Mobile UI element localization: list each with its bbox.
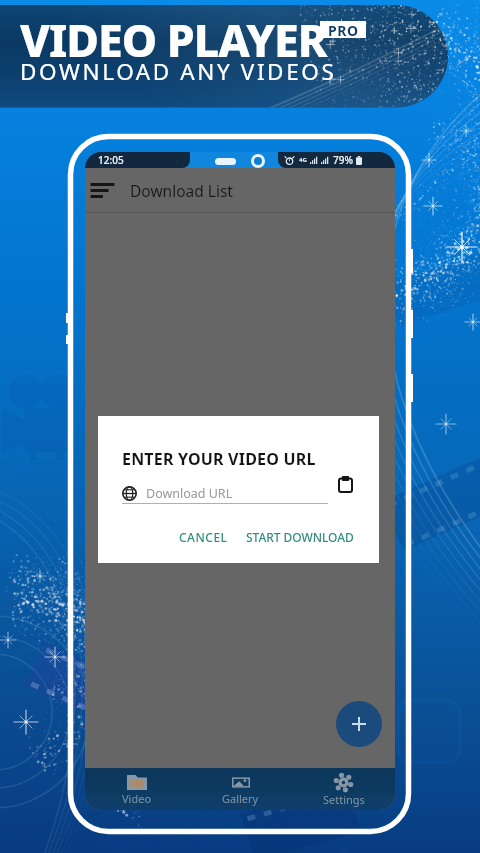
button[interactable]: CANCEL <box>171 524 236 550</box>
staticText: Download List <box>130 180 233 201</box>
staticText: START DOWNLOAD <box>246 529 354 545</box>
staticText: Download URL <box>146 485 233 502</box>
button[interactable]: START DOWNLOAD <box>238 524 362 550</box>
button[interactable]: Video <box>85 768 189 810</box>
staticText: Video <box>122 791 152 806</box>
staticText: PRO <box>328 21 359 38</box>
button[interactable]: Gallery <box>189 768 292 810</box>
staticText: DOWNLOAD ANY VIDEOS <box>20 56 337 87</box>
staticText: 12:05 <box>98 153 124 167</box>
button[interactable]: Paste from clipboard <box>333 472 357 496</box>
staticText: ENTER YOUR VIDEO URL <box>122 448 316 470</box>
staticText: Settings <box>323 792 365 807</box>
staticText: Gallery <box>222 791 259 806</box>
staticText: VIDEO PLAYER <box>20 10 326 70</box>
button[interactable]: Settings <box>292 768 395 810</box>
staticText: CANCEL <box>179 529 228 545</box>
button[interactable]: Add download <box>336 701 382 747</box>
staticText: 4G <box>299 156 307 164</box>
staticText: 79% <box>333 153 353 167</box>
button[interactable]: Menu <box>86 174 118 206</box>
